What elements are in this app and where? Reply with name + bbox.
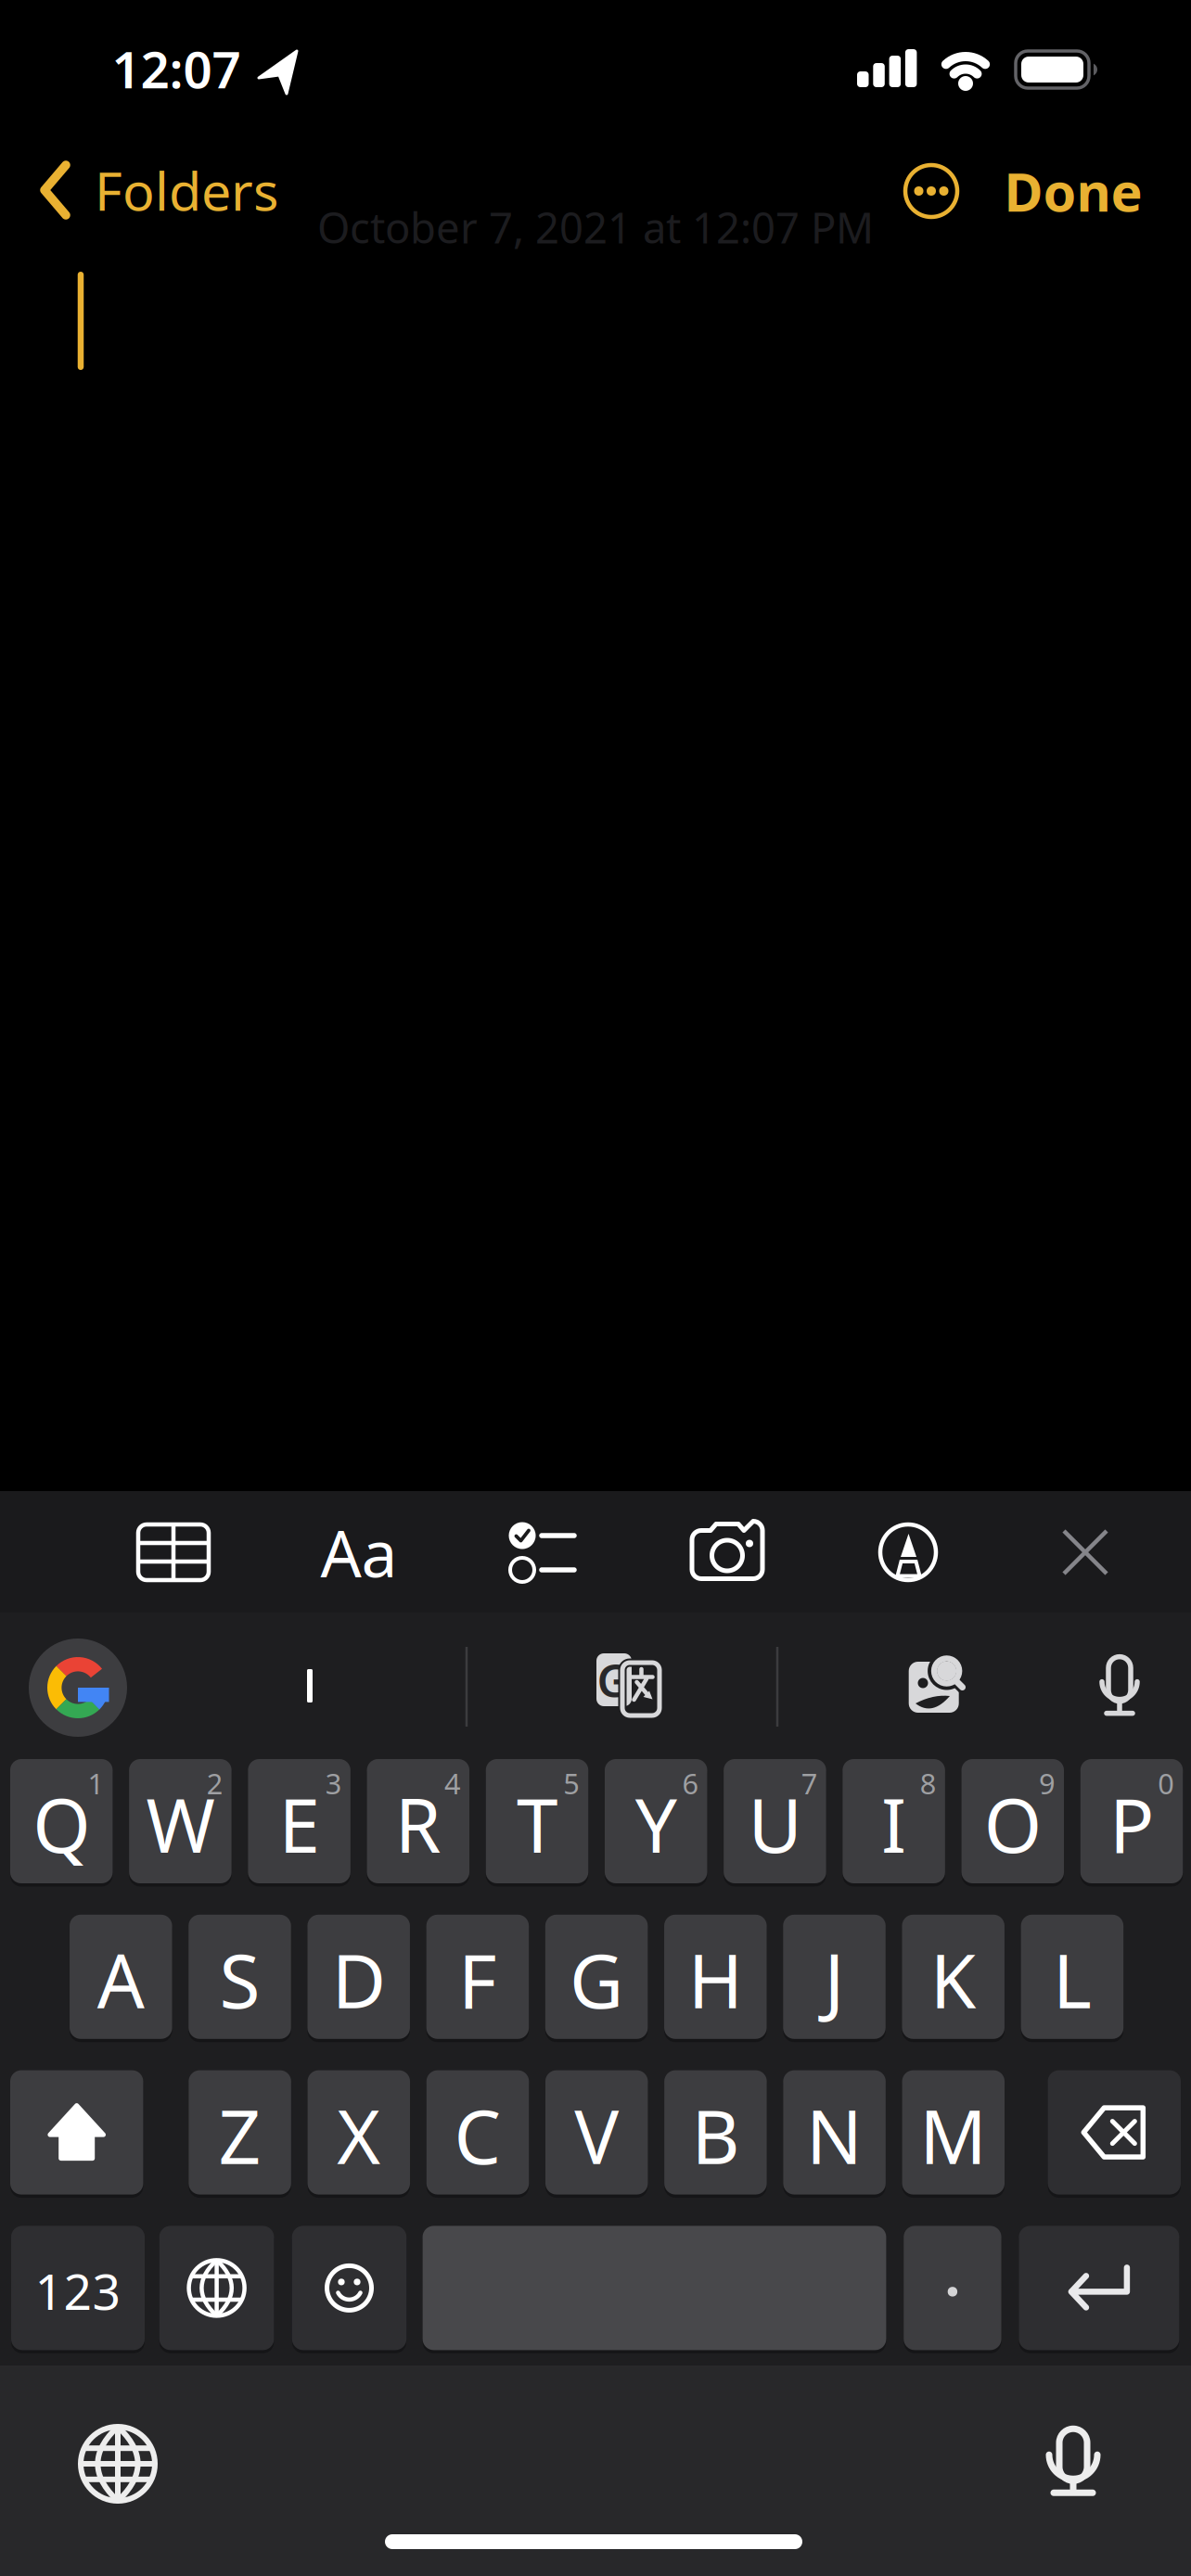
button[interactable]: Back to Folders xyxy=(39,155,278,225)
button[interactable]: Dictation xyxy=(1043,2425,1104,2499)
staticText: M xyxy=(920,2086,987,2184)
button[interactable]: Insert photo xyxy=(690,1522,764,1581)
button[interactable]: Period xyxy=(904,2226,1001,2350)
staticText: I xyxy=(881,1775,906,1873)
staticText: E xyxy=(279,1775,320,1873)
staticText: Y xyxy=(635,1775,677,1873)
button[interactable]: More options xyxy=(903,162,960,220)
staticText: D xyxy=(332,1930,386,2029)
staticText: 123 xyxy=(35,2258,121,2324)
button[interactable]: B xyxy=(664,2070,767,2195)
staticText: O xyxy=(984,1775,1041,1873)
button[interactable]: Y xyxy=(605,1759,707,1883)
staticText: 4 xyxy=(444,1764,461,1802)
button[interactable]: Google search xyxy=(28,1638,128,1738)
button[interactable]: Next keyboard xyxy=(159,2226,274,2350)
button[interactable]: H xyxy=(664,1915,767,2039)
staticText: 3 xyxy=(325,1764,342,1802)
button[interactable]: V xyxy=(545,2070,648,2195)
staticText: P xyxy=(1109,1775,1154,1873)
staticText: C xyxy=(454,2086,501,2184)
staticText: L xyxy=(1053,1930,1092,2029)
button[interactable]: R xyxy=(367,1759,469,1883)
button[interactable]: Dismiss keyboard xyxy=(1060,1527,1110,1577)
button[interactable]: L xyxy=(1021,1915,1123,2039)
button[interactable]: O xyxy=(961,1759,1064,1883)
button[interactable]: D xyxy=(307,1915,410,2039)
staticText: A xyxy=(97,1930,145,2029)
button[interactable]: U xyxy=(724,1759,826,1883)
staticText: W xyxy=(146,1775,215,1873)
button[interactable]: Shift xyxy=(10,2070,143,2195)
staticText: 1 xyxy=(88,1764,104,1802)
button[interactable]: Z xyxy=(189,2070,291,2195)
staticText: U xyxy=(748,1775,802,1873)
staticText: T xyxy=(517,1775,557,1873)
button[interactable]: Delete xyxy=(1048,2070,1181,2195)
staticText: 8 xyxy=(920,1764,937,1802)
button[interactable]: J xyxy=(783,1915,886,2039)
button[interactable]: F xyxy=(426,1915,529,2039)
staticText: Q xyxy=(33,1775,90,1873)
staticText: V xyxy=(574,2086,619,2184)
staticText: October 7, 2021 at 12:07 PM xyxy=(317,199,874,255)
staticText: 0 xyxy=(1158,1764,1174,1802)
staticText: G xyxy=(597,1651,629,1710)
staticText: B xyxy=(691,2086,740,2184)
staticText: Aa xyxy=(320,1510,397,1595)
staticText: Folders xyxy=(95,155,278,225)
button[interactable]: Text format xyxy=(320,1510,397,1595)
button[interactable]: Voice typing xyxy=(1097,1653,1142,1718)
staticText: 7 xyxy=(801,1764,818,1802)
staticText: 2 xyxy=(206,1764,223,1802)
button[interactable]: Image search xyxy=(903,1651,967,1716)
button[interactable]: W xyxy=(129,1759,232,1883)
staticText: K xyxy=(930,1930,976,2029)
staticText: F xyxy=(458,1930,497,2029)
button[interactable]: Insert table xyxy=(137,1524,210,1581)
button[interactable]: I xyxy=(843,1759,945,1883)
button[interactable]: Next keyboard xyxy=(75,2421,160,2506)
button[interactable]: Q xyxy=(10,1759,113,1883)
staticText: N xyxy=(806,2086,863,2184)
button[interactable]: A xyxy=(70,1915,172,2039)
button[interactable]: Markup xyxy=(877,1522,939,1583)
staticText: 9 xyxy=(1039,1764,1056,1802)
button[interactable]: Return xyxy=(1019,2226,1179,2350)
button[interactable]: Suggestion I xyxy=(171,1630,449,1741)
staticText: S xyxy=(219,1930,260,2029)
button[interactable]: Done xyxy=(1004,156,1142,226)
button[interactable]: C xyxy=(426,2070,529,2195)
staticText: R xyxy=(395,1775,441,1873)
staticText: X xyxy=(337,2086,381,2184)
staticText: 6 xyxy=(682,1764,699,1802)
staticText: Z xyxy=(219,2086,261,2184)
button[interactable]: G xyxy=(545,1915,648,2039)
staticText: H xyxy=(688,1930,743,2029)
staticText: Done xyxy=(1004,156,1142,226)
staticText: 5 xyxy=(563,1764,580,1802)
button[interactable]: N xyxy=(783,2070,886,2195)
button[interactable]: 123 xyxy=(11,2226,145,2350)
staticText: J xyxy=(824,1930,845,2029)
button[interactable]: Emoji xyxy=(292,2226,406,2350)
button[interactable]: P xyxy=(1080,1759,1183,1883)
button[interactable]: T xyxy=(486,1759,588,1883)
button[interactable]: E xyxy=(248,1759,350,1883)
staticText: G xyxy=(570,1930,623,2029)
staticText: 12:07 xyxy=(112,35,241,102)
button[interactable]: K xyxy=(902,1915,1004,2039)
button[interactable]: X xyxy=(308,2070,410,2195)
button[interactable]: S xyxy=(188,1915,291,2039)
button[interactable]: Checklist xyxy=(508,1522,577,1583)
button[interactable]: Translate xyxy=(596,1653,661,1718)
button[interactable]: M xyxy=(902,2070,1005,2195)
